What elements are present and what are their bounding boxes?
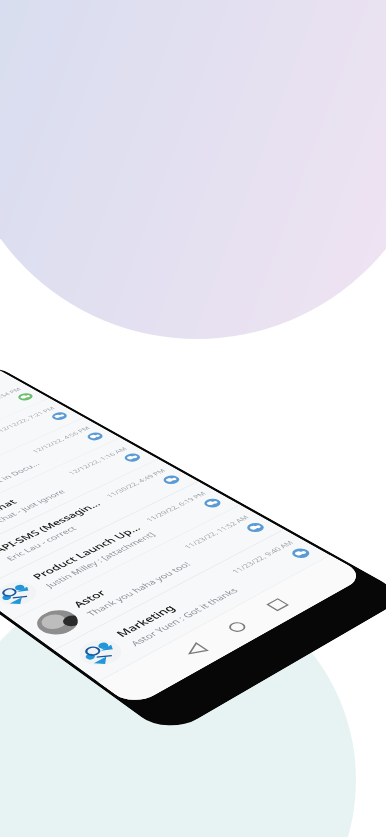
staticText: 12/13/22, 5:54 PM xyxy=(0,386,23,413)
button[interactable]: Astor xyxy=(12,505,284,650)
staticText: Product Launch Updates xyxy=(29,520,150,582)
button[interactable]: Docs review xyxy=(0,417,121,539)
staticText: 12/12/22, 7:21 PM xyxy=(0,405,57,433)
staticText: Astor Yuen : Got it thanks xyxy=(127,586,241,648)
staticText: 12/12/22, 4:56 PM xyxy=(30,425,92,454)
staticText: Marketing xyxy=(112,602,179,639)
staticText: 11/23/22, 9:40 AM xyxy=(229,539,296,575)
button[interactable]: Back xyxy=(167,633,224,668)
staticText: Justin Milley : [attachment] xyxy=(43,530,158,590)
staticText: 11/29/22, 6:19 PM xyxy=(143,490,209,523)
button[interactable]: Design Sync xyxy=(0,379,50,491)
button[interactable]: Marketing xyxy=(54,529,331,682)
button[interactable]: Home xyxy=(209,611,265,644)
staticText: Latest document in Docume... xyxy=(0,459,45,512)
staticText: Group chat xyxy=(0,497,20,530)
staticText: API-SMS (Messaging Pla... xyxy=(0,496,109,555)
staticText: Group chat - just ignore xyxy=(0,488,68,537)
button[interactable]: API-SMS (Messaging Pla... xyxy=(0,459,199,592)
staticText: 11/23/22, 11:52 AM xyxy=(181,514,251,550)
button[interactable]: Group chat xyxy=(0,438,159,565)
staticText: Eric Lau - correct xyxy=(3,524,79,563)
button[interactable]: Recents xyxy=(250,589,305,621)
staticText: Thank you haha you too! xyxy=(84,560,194,618)
staticText: 12/12/22, 1:16 AM xyxy=(66,446,129,476)
staticText: 11/30/22, 4:49 PM xyxy=(104,467,168,499)
staticText: Astor xyxy=(70,587,109,610)
button[interactable]: Product Launch Updates xyxy=(0,481,240,620)
button[interactable]: Eng - Weekly xyxy=(0,398,84,515)
